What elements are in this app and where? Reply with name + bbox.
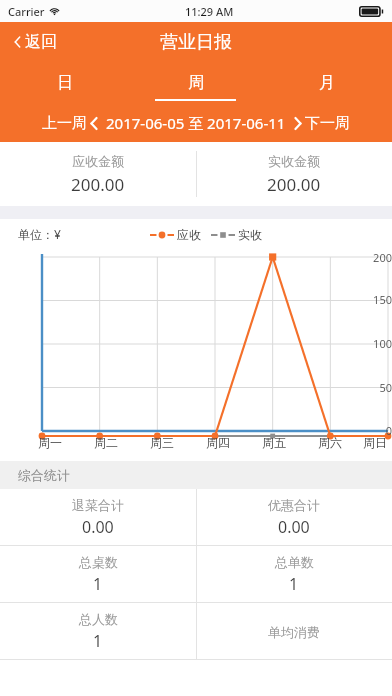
staticText: 200.00 [71,173,125,196]
button[interactable]: 优惠合计 [196,489,392,546]
button[interactable]: 返回 [0,24,73,60]
staticText: 50 [356,380,392,395]
staticText: 实收 [238,227,262,242]
staticText: 总单数 [275,554,314,570]
button[interactable]: 应收金额 [0,142,196,206]
staticText: 上一周 [42,114,87,133]
button[interactable]: 总人数 [0,603,196,660]
staticText: 总桌数 [79,554,118,570]
button[interactable]: 日 [0,62,130,104]
staticText: 周五 [262,435,286,450]
button[interactable]: 单均消费 [196,603,392,660]
staticText: 返回 [25,32,57,52]
staticText: 1 [93,573,103,595]
staticText: 周三 [150,435,174,450]
staticText: 综合统计 [18,467,70,483]
staticText: 周二 [94,435,118,450]
staticText: 周 [188,73,204,93]
staticText: 0.00 [278,516,310,538]
button[interactable]: 月 [261,62,392,104]
staticText: 单均消费 [268,624,320,640]
staticText: 200.00 [267,173,321,196]
staticText: 营业日报 [160,31,232,54]
staticText: 总人数 [79,611,118,627]
staticText: 单位：¥ [18,226,61,242]
staticText: 下一周 [305,114,350,133]
staticText: 100 [356,336,392,351]
staticText: 周一 [38,435,62,450]
button[interactable]: 总桌数 [0,546,196,603]
staticText: 实收金额 [268,153,320,169]
staticText: 退菜合计 [72,497,124,513]
staticText: 11:29 AM [185,4,234,19]
staticText: 优惠合计 [268,497,320,513]
button[interactable]: 上一周 [39,109,101,138]
button[interactable]: 实收金额 [196,142,392,206]
button[interactable]: 退菜合计 [0,489,196,546]
staticText: 应收 [177,227,201,242]
staticText: 0 [356,423,392,438]
staticText: 1 [93,630,103,652]
staticText: 月 [319,73,335,93]
staticText: 日 [57,73,73,93]
staticText: 周四 [206,435,230,450]
staticText: 周六 [318,435,342,450]
staticText: 0.00 [82,516,114,538]
staticText: 150 [356,292,392,307]
staticText: 1 [289,573,299,595]
staticText: Carrier [8,4,45,19]
staticText: 应收金额 [72,153,124,169]
button[interactable]: 下一周 [291,109,353,138]
button[interactable]: 总单数 [196,546,392,603]
staticText: 周日 [363,435,387,450]
button[interactable]: 周 [130,62,261,104]
staticText: 2017-06-05 至 2017-06-11 [106,113,286,133]
staticText: 200 [356,250,392,265]
